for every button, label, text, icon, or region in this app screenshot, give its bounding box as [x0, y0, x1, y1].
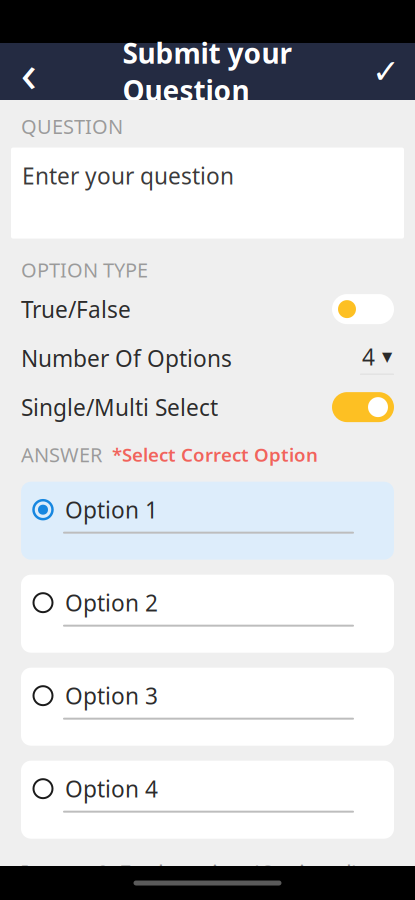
- button[interactable]: True/False: [0, 287, 415, 331]
- staticText: Option 3: [65, 681, 158, 711]
- staticText: ▼: [382, 349, 392, 364]
- staticText: Number Of Options: [21, 343, 232, 373]
- button[interactable]: Option 2: [21, 575, 394, 653]
- staticText: Image & Explanation (Optional): [21, 859, 359, 889]
- staticText: OPTION TYPE: [21, 257, 148, 283]
- staticText: Submit your Question: [122, 34, 292, 109]
- staticText: Option 2: [65, 588, 158, 618]
- staticText: True/False: [21, 294, 131, 324]
- staticText: ANSWER: [21, 441, 102, 468]
- staticText: *Select Correct Option: [112, 442, 318, 467]
- button[interactable]: Single/Multi Select: [0, 385, 415, 429]
- button[interactable]: Back: [0, 43, 58, 100]
- button[interactable]: Option 3: [21, 668, 394, 746]
- staticText: Enter your question: [22, 161, 234, 191]
- staticText: Option 4: [65, 774, 158, 804]
- button[interactable]: Number Of Options: [0, 336, 415, 380]
- staticText: Single/Multi Select: [21, 392, 218, 422]
- button[interactable]: Option 1: [21, 482, 394, 560]
- button[interactable]: Submit: [357, 43, 415, 100]
- button[interactable]: Option 4: [21, 761, 394, 839]
- staticText: ‹: [20, 36, 37, 107]
- staticText: Option 1: [65, 495, 158, 525]
- staticText: ✓: [372, 53, 400, 90]
- staticText: 4: [362, 342, 375, 372]
- staticText: QUESTION: [21, 113, 123, 140]
- button[interactable]: Enter your question: [11, 148, 404, 239]
